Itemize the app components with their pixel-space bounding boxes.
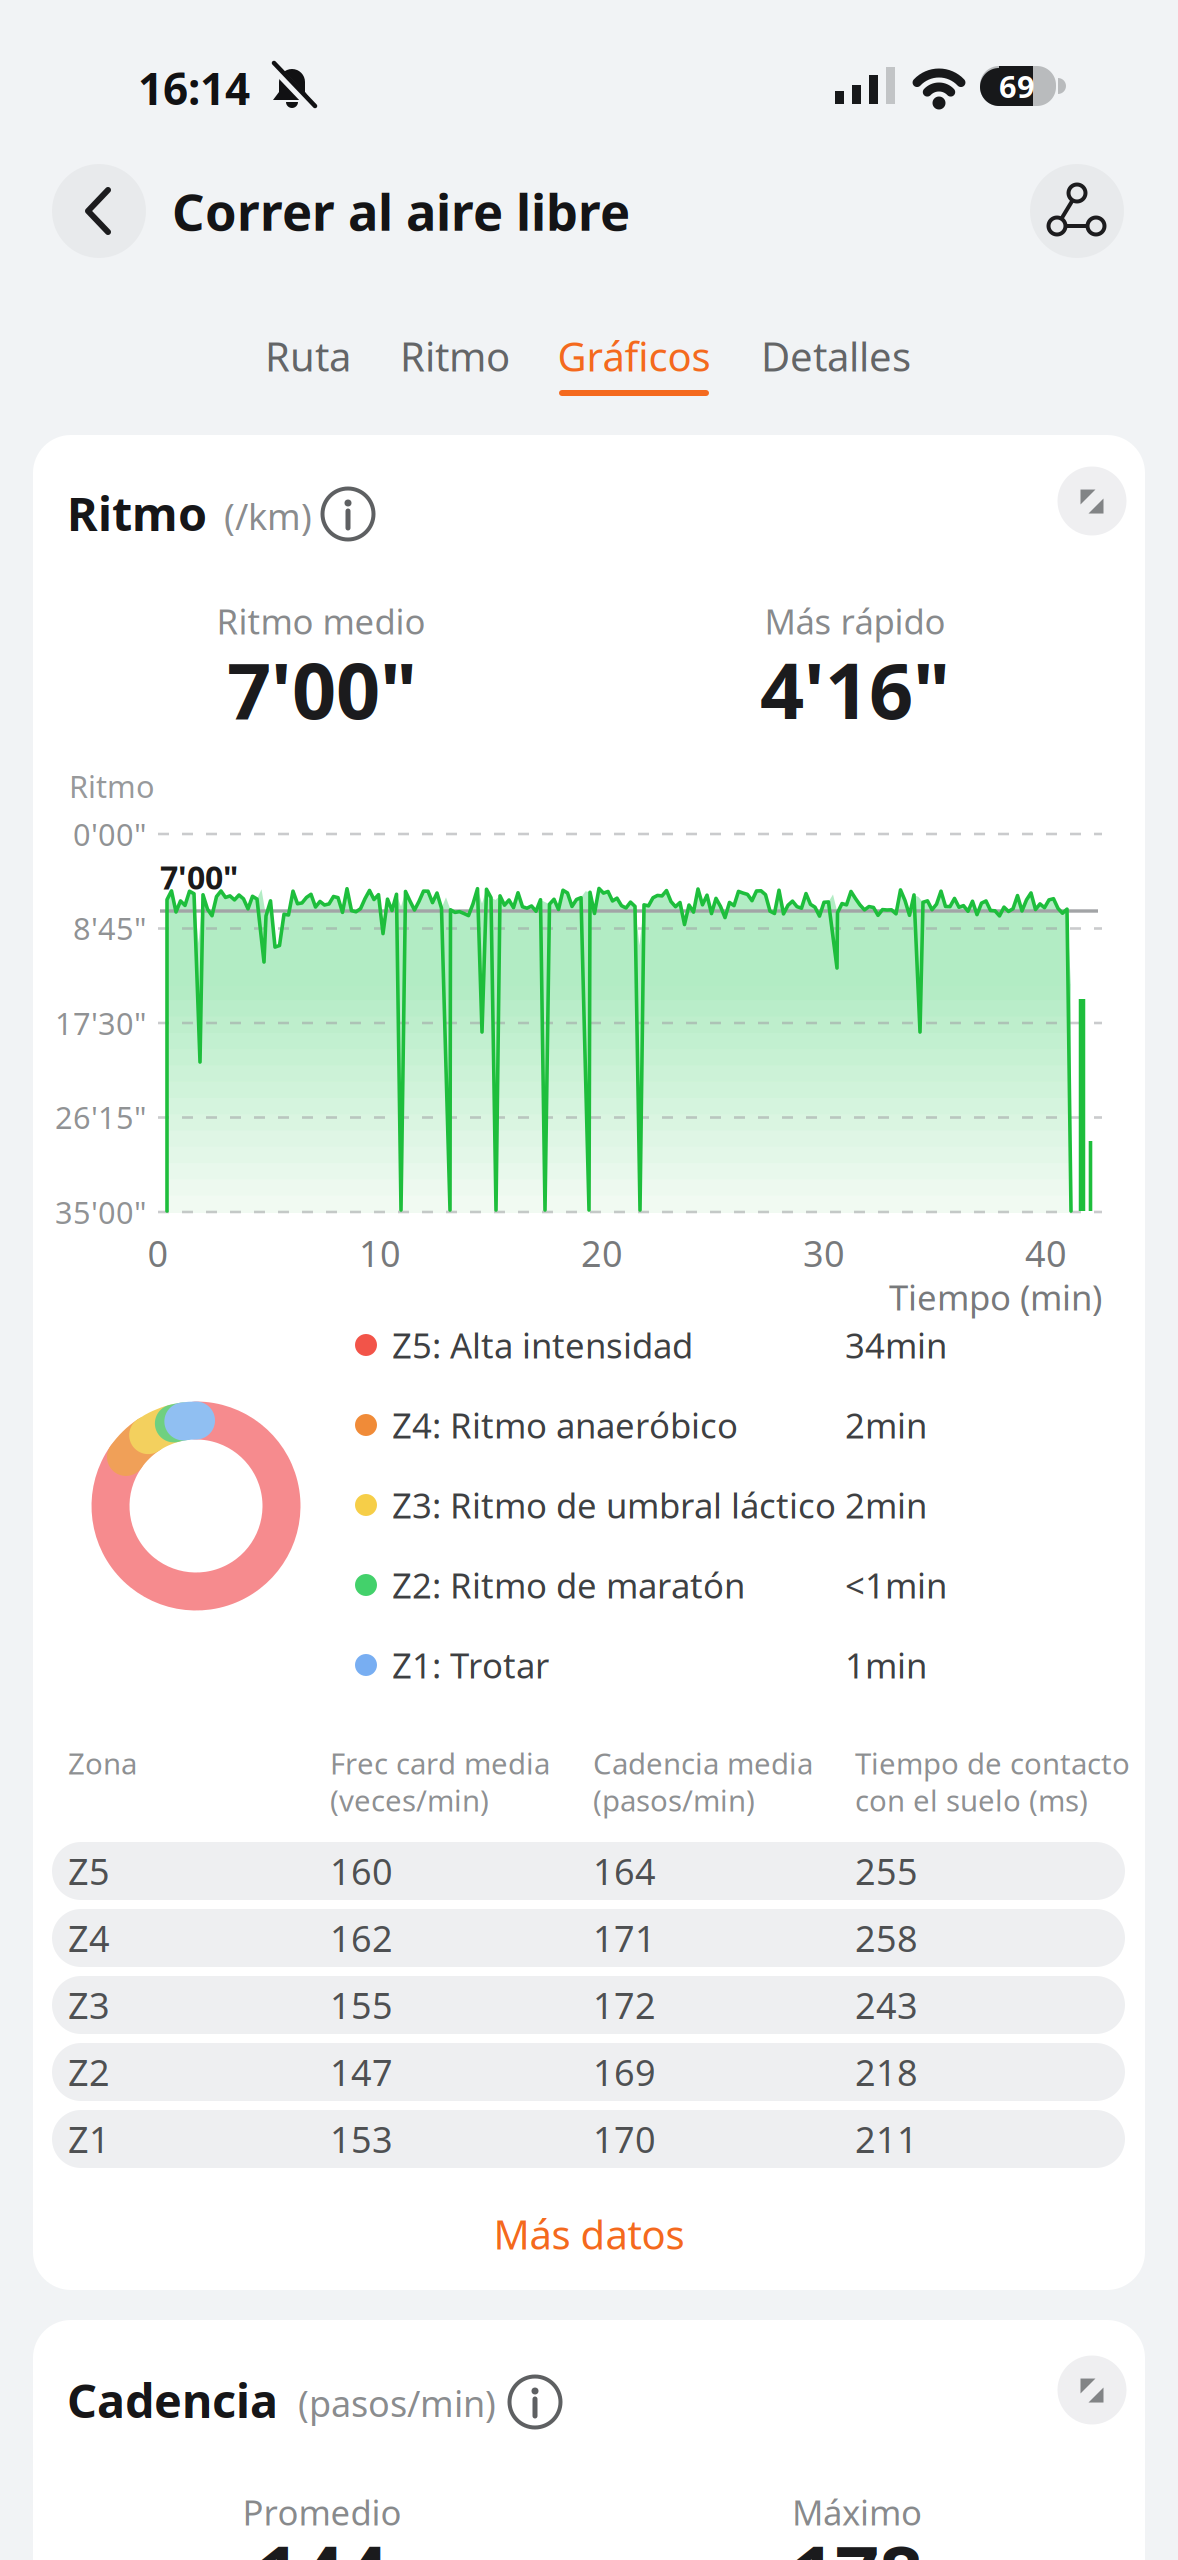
staticText: 35'00" [55,1192,147,1232]
staticText: 170 [593,2115,656,2163]
staticText: 4'16" [760,638,950,740]
staticText: 178 [791,2521,923,2560]
staticText: (veces/min) [330,1780,489,1819]
staticText: 171 [593,1914,656,1962]
button[interactable]: Atrás [52,164,146,258]
button[interactable]: Ritmo [400,329,510,382]
staticText: Z5: Alta intensidad [392,1322,693,1368]
staticText: <1min [845,1562,947,1608]
button[interactable]: Ampliar [1057,466,1126,535]
staticText: 40 [1025,1229,1067,1277]
button[interactable]: Información [322,488,374,540]
staticText: 169 [593,2048,656,2096]
staticText: 7'00" [227,638,417,740]
staticText: Cadencia media [593,1743,813,1782]
button[interactable]: Más datos [493,2207,684,2260]
staticText: Z4 [68,1914,110,1962]
staticText: (pasos/min) [298,2379,496,2427]
staticText: 2min [845,1402,927,1448]
staticText: 255 [855,1847,918,1895]
staticText: 160 [330,1847,393,1895]
staticText: 30 [803,1229,845,1277]
staticText: Ritmo [69,766,155,806]
staticText: 153 [330,2115,393,2163]
staticText: Más rápido [764,598,945,644]
staticText: Z4: Ritmo anaeróbico [392,1402,738,1448]
button[interactable]: Gráficos [557,329,710,382]
staticText: 211 [855,2115,918,2163]
staticText: 16:14 [138,59,250,117]
staticText: 20 [581,1229,623,1277]
staticText: 162 [330,1914,393,1962]
staticText: Detalles [761,329,911,382]
staticText: 0 [147,1229,168,1277]
staticText: 8'45" [73,908,147,948]
staticText: con el suelo (ms) [855,1780,1088,1819]
staticText: 69 [999,66,1035,106]
button[interactable]: Información [509,2376,561,2428]
staticText: 155 [330,1981,393,2029]
staticText: Z5 [68,1847,110,1895]
staticText: Más datos [493,2207,684,2260]
staticText: Promedio [242,2489,401,2535]
staticText: 258 [855,1914,918,1962]
staticText: Z3: Ritmo de umbral láctico [392,1482,836,1528]
staticText: Ruta [265,329,351,382]
staticText: (/km) [224,492,312,540]
staticText: Z1 [68,2115,110,2163]
button[interactable]: Detalles [761,329,911,382]
staticText: 7'00" [160,856,238,898]
staticText: Tiempo (min) [889,1274,1102,1320]
button[interactable]: Ampliar [1057,2355,1126,2424]
staticText: Z2 [68,2048,110,2096]
staticText: 147 [330,2048,393,2096]
staticText: Tiempo de contacto [855,1743,1130,1782]
staticText: 26'15" [55,1097,147,1137]
staticText: Cadencia [67,2369,278,2431]
staticText: 1min [845,1642,927,1688]
staticText: Frec card media [330,1743,550,1782]
button[interactable]: Compartir [1030,164,1124,258]
staticText: 144 [256,2521,388,2560]
staticText: Ritmo medio [216,598,425,644]
staticText: 172 [593,1981,656,2029]
staticText: Zona [68,1743,137,1782]
button[interactable]: Ruta [265,329,351,382]
staticText: Máximo [792,2489,922,2535]
staticText: Gráficos [557,329,710,382]
staticText: 243 [855,1981,918,2029]
staticText: Z2: Ritmo de maratón [392,1562,745,1608]
staticText: Z3 [68,1981,110,2029]
staticText: 34min [845,1322,947,1368]
staticText: Ritmo [400,329,510,382]
staticText: 17'30" [55,1003,147,1043]
staticText: 164 [593,1847,656,1895]
staticText: Z1: Trotar [392,1642,549,1688]
staticText: 0'00" [73,814,147,854]
staticText: Correr al aire libre [172,177,630,245]
staticText: 218 [855,2048,918,2096]
staticText: 10 [359,1229,401,1277]
staticText: 2min [845,1482,927,1528]
staticText: Ritmo [67,482,207,544]
staticText: (pasos/min) [593,1780,755,1819]
